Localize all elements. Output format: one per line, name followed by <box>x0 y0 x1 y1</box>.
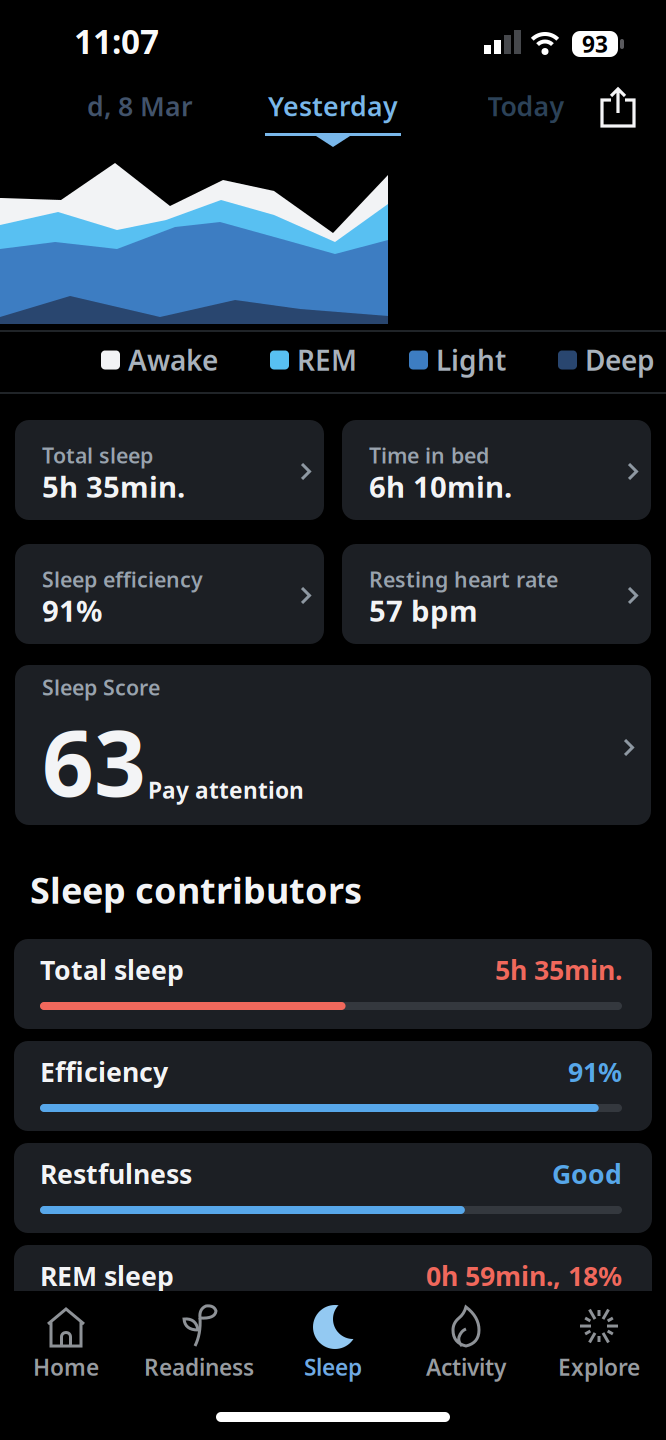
staticText: Sleep contributors <box>30 866 362 914</box>
staticText: Light <box>436 341 506 379</box>
staticText: Pay attention <box>148 775 304 805</box>
staticText: Yesterday <box>268 88 398 124</box>
button[interactable]: Explore <box>532 1302 665 1380</box>
staticText: Home <box>33 1352 99 1382</box>
staticText: 5h 35min. <box>42 467 185 506</box>
button[interactable]: Restfulness <box>14 1143 652 1233</box>
button[interactable]: Resting heart rate <box>342 544 651 644</box>
staticText: Time in bed <box>369 441 489 469</box>
staticText: 0h 59min., 18% <box>426 1258 622 1293</box>
staticText: Restfulness <box>40 1156 192 1191</box>
button[interactable]: Sleep Score <box>15 665 651 825</box>
staticText: Sleep Score <box>42 673 160 701</box>
staticText: Total sleep <box>42 441 153 469</box>
button[interactable] <box>600 87 638 129</box>
button[interactable]: REM sleep <box>14 1245 652 1335</box>
staticText: Today <box>487 88 564 124</box>
staticText: Sleep <box>304 1352 362 1382</box>
staticText: 57 bpm <box>369 591 478 630</box>
button[interactable]: d, 8 Mar <box>55 84 225 128</box>
button[interactable]: Today <box>456 84 596 128</box>
staticText: Readiness <box>144 1352 254 1382</box>
staticText: Awake <box>128 341 218 379</box>
staticText: 91% <box>42 591 102 630</box>
staticText: d, 8 Mar <box>87 88 193 124</box>
staticText: 93 <box>582 29 608 59</box>
staticText: Sleep efficiency <box>42 565 203 593</box>
staticText: REM sleep <box>40 1258 174 1293</box>
staticText: REM <box>297 341 357 379</box>
button[interactable]: Readiness <box>132 1302 265 1380</box>
staticText: 11:07 <box>74 19 159 63</box>
staticText: 91% <box>568 1054 622 1089</box>
button[interactable]: Yesterday <box>233 84 433 128</box>
staticText: Efficiency <box>40 1054 168 1089</box>
staticText: 63 <box>42 701 146 821</box>
staticText: 6h 10min. <box>369 467 512 506</box>
staticText: Deep <box>585 341 655 379</box>
button[interactable]: Total sleep <box>15 420 324 520</box>
button[interactable]: Sleep <box>266 1302 399 1380</box>
staticText: Resting heart rate <box>369 565 558 593</box>
staticText: Explore <box>558 1352 640 1382</box>
button[interactable]: Home <box>0 1302 132 1380</box>
button[interactable]: Time in bed <box>342 420 651 520</box>
staticText: Good <box>552 1156 622 1191</box>
staticText: 5h 35min. <box>495 952 622 987</box>
button[interactable]: Efficiency <box>14 1041 652 1131</box>
button[interactable]: Total sleep <box>14 939 652 1029</box>
staticText: Total sleep <box>40 952 184 987</box>
button[interactable]: Sleep efficiency <box>15 544 324 644</box>
button[interactable]: Activity <box>399 1302 532 1380</box>
staticText: Activity <box>426 1352 506 1382</box>
